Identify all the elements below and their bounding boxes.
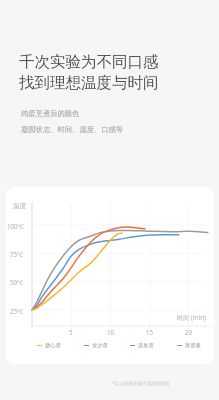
staticText: 20 [185, 328, 193, 336]
staticText: 找到理想温度与时间 [19, 73, 159, 93]
staticText: 鸡蛋烹煮后的颜色 [21, 109, 80, 118]
staticText: 金沙蛋 [92, 342, 108, 349]
button[interactable]: 温泉蛋 [130, 342, 154, 349]
staticText: 蒸蛋羹 [185, 342, 201, 349]
staticText: 25℃ [10, 307, 24, 315]
staticText: 时间 (min) [177, 313, 206, 321]
staticText: 10 [107, 328, 115, 336]
button[interactable]: 蒸蛋羹 [177, 342, 201, 349]
staticText: 75℃ [10, 250, 24, 258]
staticText: 温泉蛋 [138, 342, 154, 349]
staticText: 温度 [13, 202, 27, 210]
button[interactable]: 金沙蛋 [84, 342, 108, 349]
staticText: 50℃ [10, 278, 24, 286]
button[interactable]: 溏心蛋 [37, 342, 61, 349]
staticText: 溏心蛋 [45, 342, 61, 349]
staticText: 15 [146, 328, 154, 336]
staticText: 100℃ [7, 222, 24, 230]
staticText: 5 [69, 328, 73, 336]
staticText: 千次实验为不同口感 [19, 52, 159, 72]
staticText: 凝固状态、时间、温度、口感等 [21, 125, 124, 134]
staticText: *以上数据来源于实验室数据 [112, 380, 170, 386]
